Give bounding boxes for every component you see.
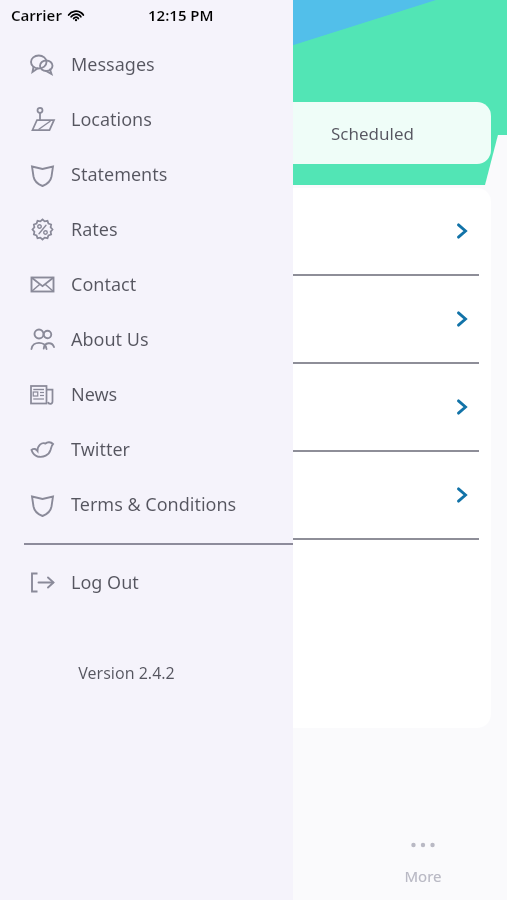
button[interactable]: Rates xyxy=(0,202,293,257)
staticText: £310.55 xyxy=(34,323,86,342)
button[interactable]: Statements xyxy=(0,147,293,202)
button[interactable]: Car Loan xyxy=(16,276,491,364)
button[interactable]: Twitter xyxy=(0,422,293,477)
staticText: Log Out xyxy=(71,570,139,595)
staticText: Mortgage xyxy=(34,209,109,231)
button[interactable]: News xyxy=(0,367,293,422)
staticText: Twitter xyxy=(71,437,131,462)
staticText: News xyxy=(71,382,118,407)
button[interactable]: Log Out xyxy=(0,555,293,610)
button[interactable]: Contact xyxy=(0,257,293,312)
button[interactable]: Transfer xyxy=(169,812,338,900)
staticText: Recent xyxy=(107,122,162,145)
staticText: More xyxy=(404,866,442,886)
staticText: 12:15 PM xyxy=(148,5,214,25)
button[interactable]: Messages xyxy=(0,37,293,92)
staticText: Contact xyxy=(71,272,137,297)
staticText: Version 2.4.2 xyxy=(0,662,253,684)
button[interactable]: More xyxy=(338,812,507,900)
button[interactable]: About Us xyxy=(0,312,293,367)
staticText: Messages xyxy=(71,52,155,77)
button[interactable]: Scheduled xyxy=(253,102,491,164)
staticText: About Us xyxy=(71,327,149,352)
staticText: Terms & Conditions xyxy=(71,492,237,517)
staticText: Carrier xyxy=(11,5,62,25)
button[interactable]: Insurance xyxy=(16,452,491,540)
staticText: Scheduled xyxy=(331,122,414,145)
staticText: Savings xyxy=(34,385,92,407)
staticText: Rates xyxy=(71,217,118,242)
button[interactable]: Locations xyxy=(0,92,293,147)
button[interactable]: Terms & Conditions xyxy=(0,477,293,532)
staticText: Locations xyxy=(71,107,152,132)
button[interactable]: Mortgage xyxy=(16,188,491,276)
staticText: £84.20 xyxy=(34,499,78,518)
button[interactable]: Recent xyxy=(16,102,253,164)
staticText: Statements xyxy=(71,162,168,187)
staticText: £1,240.00 xyxy=(34,235,98,254)
button[interactable]: Savings xyxy=(16,364,491,452)
